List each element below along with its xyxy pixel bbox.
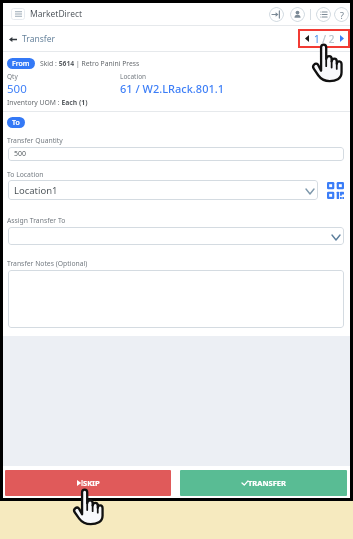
- staticText: Transfer: [22, 33, 55, 45]
- staticText: 500: [14, 149, 27, 159]
- button[interactable]: 500: [8, 147, 344, 161]
- staticText: 61 / W2.LRack.801.1: [120, 81, 224, 96]
- button[interactable]: Location1: [8, 180, 318, 200]
- button[interactable]: [8, 227, 344, 245]
- staticText: Skid : 5614 | Retro Panini Press: [40, 59, 140, 68]
- staticText: MarketDirect: [30, 8, 83, 20]
- staticText: Transfer Quantity: [7, 136, 63, 145]
- staticText: From: [12, 59, 30, 69]
- button[interactable]: Previous page: [302, 32, 311, 45]
- button[interactable]: Scan barcode: [327, 182, 344, 199]
- button[interactable]: Log in: [269, 7, 284, 22]
- button[interactable]: SKIP: [5, 470, 171, 496]
- staticText: SKIP: [83, 478, 100, 488]
- staticText: Inventory UOM : Each (1): [7, 98, 88, 107]
- staticText: ?: [340, 9, 344, 21]
- button[interactable]: Next page: [337, 32, 346, 45]
- staticText: 500: [7, 81, 27, 97]
- staticText: 1 / 2: [314, 32, 335, 46]
- staticText: To: [12, 118, 20, 128]
- button[interactable]: Orders: [316, 7, 331, 22]
- staticText: Location1: [14, 184, 58, 197]
- button[interactable]: TRANSFER: [180, 470, 347, 496]
- button[interactable]: Account: [290, 7, 305, 22]
- staticText: Transfer Notes (Optional): [7, 259, 88, 268]
- staticText: Qty: [7, 72, 18, 81]
- button[interactable]: Menu: [11, 8, 25, 20]
- staticText: Location: [120, 72, 147, 81]
- staticText: To Location: [7, 170, 44, 179]
- button[interactable]: Transfer: [9, 33, 55, 45]
- button[interactable]: Help: [334, 7, 349, 22]
- button[interactable]: [8, 270, 344, 328]
- staticText: TRANSFER: [248, 478, 286, 488]
- staticText: Assign Transfer To: [7, 216, 66, 225]
